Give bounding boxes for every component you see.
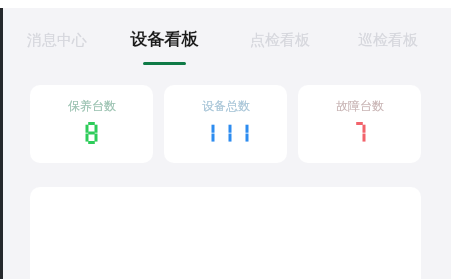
staticText: 设备看板 [130,29,198,50]
staticText: 保养台数 [68,98,116,113]
staticText: 故障台数 [336,98,384,113]
button[interactable]: 保养台数 [30,85,153,163]
staticText: 消息中心 [27,31,87,50]
staticText: 巡检看板 [358,31,418,50]
button[interactable]: 消息中心 [27,31,87,50]
button[interactable]: 设备总数 [164,85,287,163]
button[interactable]: 故障台数 [298,85,421,163]
button[interactable]: 点检看板 [250,31,310,50]
staticText: 设备总数 [202,98,250,113]
staticText: 点检看板 [250,31,310,50]
button[interactable]: 巡检看板 [358,31,418,50]
button[interactable]: 设备看板 [130,29,198,65]
